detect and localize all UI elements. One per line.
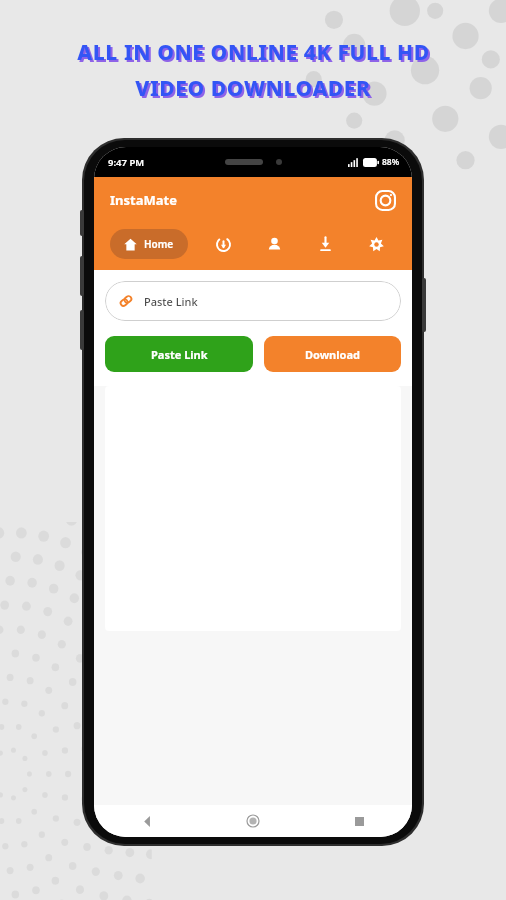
staticText: Paste Link <box>151 347 208 362</box>
button[interactable]: Recent apps <box>306 805 412 837</box>
staticText: 9:47 PM <box>108 156 145 169</box>
staticText: Paste Link <box>144 294 198 309</box>
staticText: VIDEO DOWNLOADER <box>137 76 373 105</box>
staticText: VIDEO DOWNLOADER <box>135 74 371 103</box>
button[interactable]: Downloads <box>309 228 341 260</box>
button[interactable]: Settings <box>360 228 392 260</box>
button[interactable]: Instagram <box>370 185 400 215</box>
staticText: Home <box>144 237 174 251</box>
button[interactable]: Reels downloader <box>207 228 239 260</box>
button[interactable]: Profile <box>258 228 290 260</box>
staticText: ALL IN ONE ONLINE 4K FULL HD <box>79 40 432 69</box>
staticText: 88% <box>382 156 400 168</box>
staticText: Download <box>305 347 360 362</box>
button[interactable]: Paste Link <box>105 336 253 372</box>
button[interactable]: Home <box>110 229 188 259</box>
staticText: InstaMate <box>110 191 177 209</box>
button[interactable]: Home <box>200 805 306 837</box>
staticText: ALL IN ONE ONLINE 4K FULL HD <box>77 38 430 67</box>
button[interactable]: Download <box>264 336 401 372</box>
button[interactable]: Paste Link <box>105 281 401 321</box>
button[interactable]: Back <box>94 805 200 837</box>
